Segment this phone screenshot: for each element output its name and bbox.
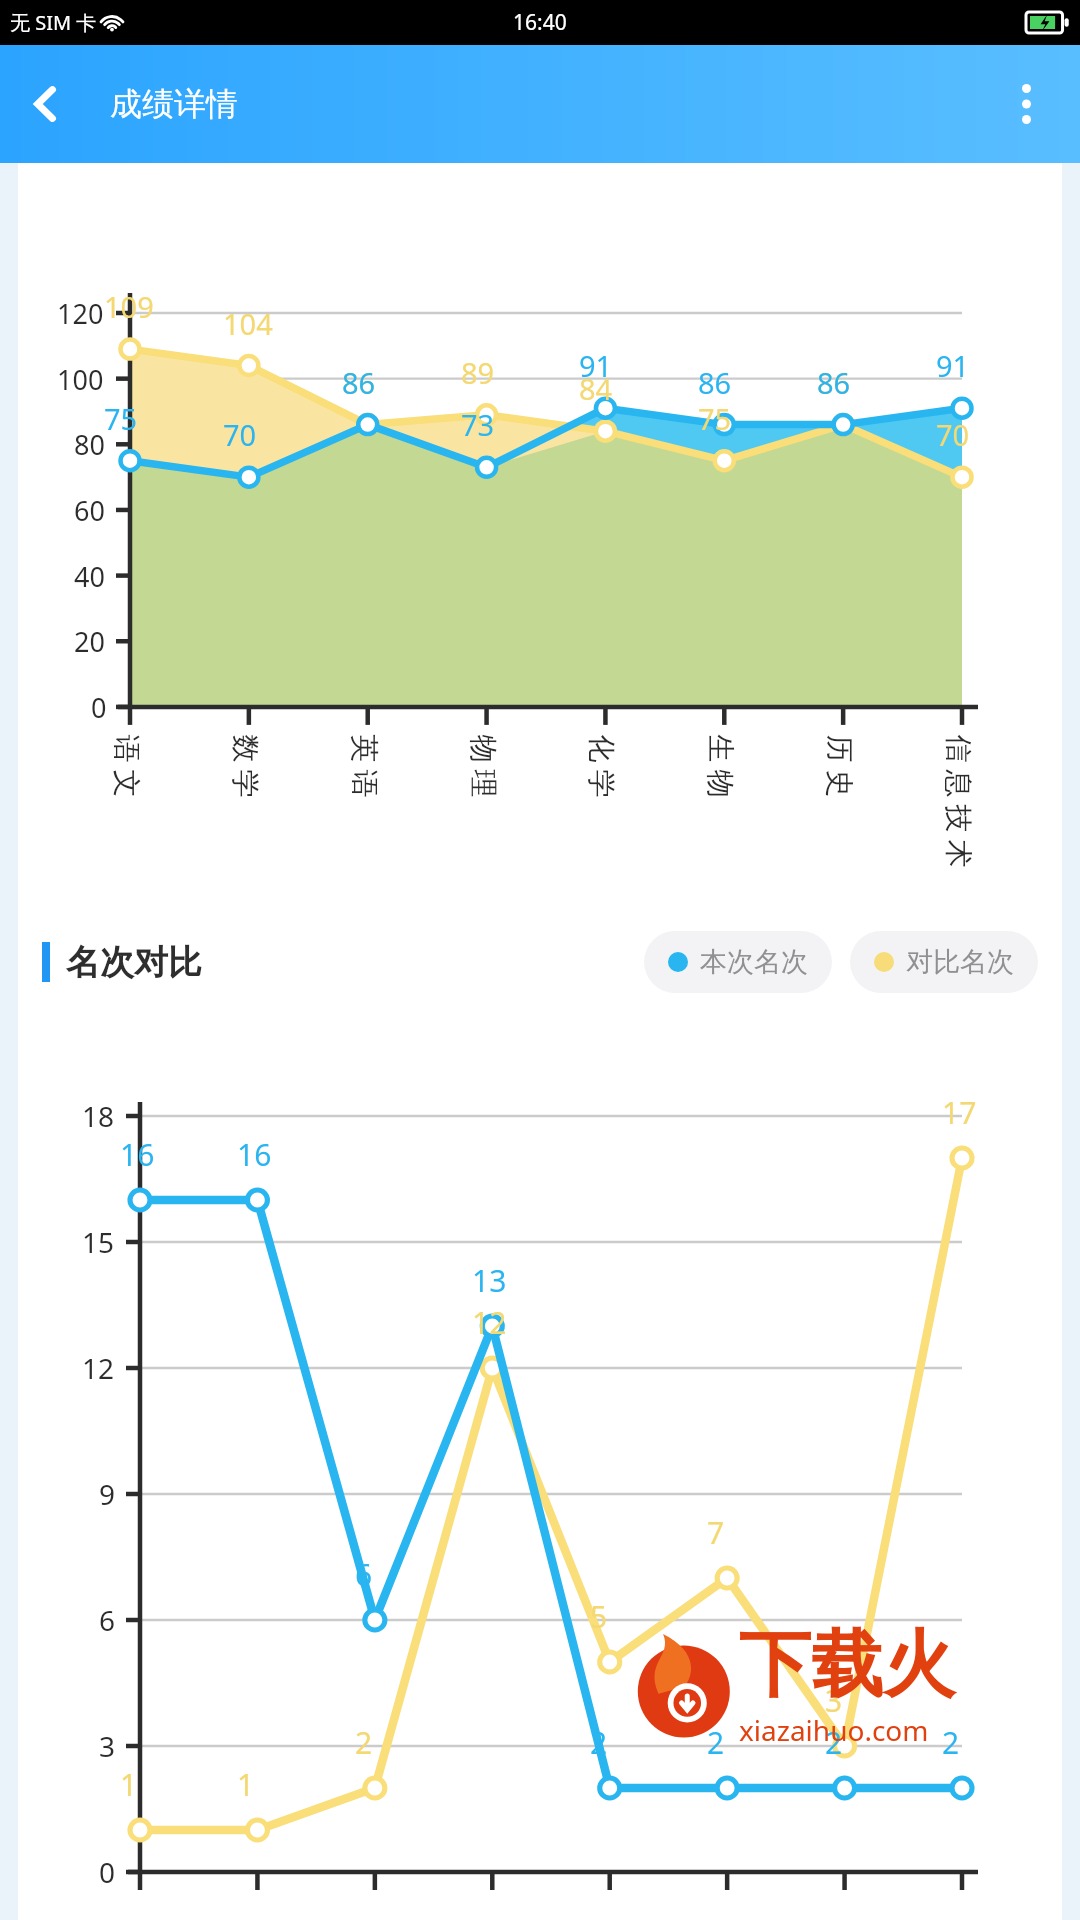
staticText: 3 — [99, 1727, 116, 1765]
button[interactable]: Back — [8, 66, 84, 142]
staticText: 语 — [346, 769, 381, 797]
staticText: 5 — [590, 1596, 608, 1637]
staticText: 12 — [472, 1302, 507, 1343]
staticText: 术 — [940, 839, 975, 867]
staticText: 语 — [108, 734, 143, 762]
staticText: 6 — [355, 1554, 373, 1595]
staticText: 91 — [579, 346, 613, 385]
staticText: 物 — [465, 734, 500, 762]
staticText: 89 — [461, 353, 495, 392]
staticText: 史 — [821, 769, 856, 797]
staticText: 70 — [936, 415, 970, 454]
staticText: 2 — [355, 1722, 373, 1763]
staticText: 成绩详情 — [110, 84, 238, 124]
staticText: 104 — [223, 304, 273, 343]
staticText: 下载火 — [739, 1620, 955, 1711]
staticText: 信 — [940, 734, 975, 762]
staticText: 理 — [465, 769, 500, 797]
staticText: 2 — [942, 1722, 960, 1763]
staticText: 109 — [104, 287, 154, 326]
staticText: 7 — [707, 1512, 725, 1553]
staticText: 学 — [227, 769, 262, 797]
staticText: 0 — [99, 1853, 116, 1891]
staticText: 73 — [461, 405, 495, 444]
staticText: 70 — [223, 415, 257, 454]
staticText: xiazaihuo.com — [739, 1711, 929, 1749]
staticText: 9 — [99, 1475, 116, 1513]
staticText: 数 — [227, 734, 262, 762]
staticText: 40 — [74, 558, 105, 595]
staticText: 名次对比 — [66, 941, 202, 984]
button[interactable]: 对比名次 — [850, 931, 1038, 993]
staticText: 13 — [472, 1260, 507, 1301]
staticText: 120 — [57, 295, 104, 332]
staticText: 15 — [82, 1223, 115, 1261]
staticText: 20 — [74, 623, 105, 660]
staticText: 技 — [940, 804, 975, 832]
staticText: 1 — [120, 1764, 138, 1805]
staticText: 无 SIM 卡 — [10, 9, 97, 36]
staticText: 对比名次 — [906, 945, 1014, 979]
staticText: 生 — [702, 734, 737, 762]
staticText: 历 — [821, 734, 856, 762]
staticText: 16 — [237, 1134, 272, 1175]
staticText: 17 — [942, 1092, 977, 1133]
staticText: 12 — [82, 1349, 115, 1387]
staticText: 60 — [74, 492, 105, 529]
staticText: 物 — [702, 769, 737, 797]
staticText: 86 — [698, 363, 732, 402]
staticText: 化 — [583, 734, 618, 762]
button[interactable]: 本次名次 — [644, 931, 832, 993]
staticText: 91 — [936, 346, 970, 385]
staticText: 2 — [590, 1722, 608, 1763]
staticText: 16:40 — [513, 8, 567, 37]
button[interactable]: More options — [988, 66, 1064, 142]
staticText: 80 — [74, 426, 105, 463]
staticText: 16 — [120, 1134, 155, 1175]
staticText: 本次名次 — [700, 945, 808, 979]
staticText: 84 — [579, 369, 613, 408]
staticText: 18 — [82, 1097, 115, 1135]
staticText: 0 — [91, 689, 107, 726]
staticText: 息 — [940, 769, 975, 797]
staticText: 100 — [57, 361, 104, 398]
staticText: 文 — [108, 769, 143, 797]
staticText: 3 — [825, 1680, 843, 1721]
staticText: 学 — [583, 769, 618, 797]
staticText: 2 — [825, 1722, 843, 1763]
staticText: 86 — [342, 363, 376, 402]
staticText: 6 — [99, 1601, 116, 1639]
staticText: 86 — [817, 363, 851, 402]
staticText: 86 — [817, 363, 851, 402]
staticText: 英 — [346, 734, 381, 762]
staticText: 75 — [698, 399, 732, 438]
staticText: 86 — [342, 363, 376, 402]
staticText: 1 — [237, 1764, 255, 1805]
staticText: 75 — [104, 399, 138, 438]
staticText: 2 — [707, 1722, 725, 1763]
